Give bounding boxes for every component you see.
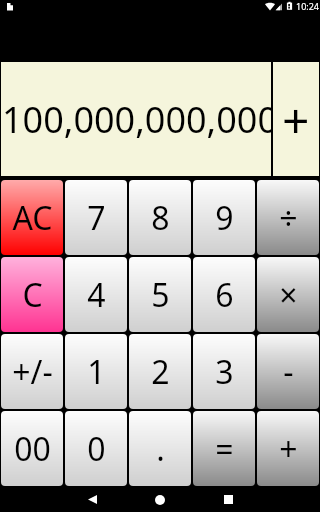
staticText: 10:24	[296, 0, 320, 12]
button[interactable]: 9	[193, 180, 255, 255]
staticText: +/-	[12, 350, 53, 394]
staticText: 2	[151, 350, 170, 394]
button[interactable]: 5	[129, 257, 191, 332]
button[interactable]: 100,000,000,000	[1, 62, 271, 176]
button[interactable]: 00	[1, 411, 63, 486]
staticText: 8	[151, 196, 170, 240]
button[interactable]: 7	[65, 180, 127, 255]
button[interactable]: .	[129, 411, 191, 486]
button[interactable]: 6	[193, 257, 255, 332]
staticText: 0	[87, 427, 106, 471]
button[interactable]: 3	[193, 334, 255, 409]
staticText: ÷	[279, 196, 298, 240]
staticText: 7	[87, 196, 106, 240]
button[interactable]: C	[1, 257, 63, 332]
staticText: .	[156, 427, 165, 471]
staticText: ×	[279, 273, 298, 317]
staticText: 00	[14, 427, 51, 471]
button[interactable]: 0	[65, 411, 127, 486]
button[interactable]: +/-	[1, 334, 63, 409]
staticText: 1	[87, 350, 106, 394]
button[interactable]: 8	[129, 180, 191, 255]
staticText: 9	[215, 196, 234, 240]
staticText: AC	[12, 196, 53, 240]
button[interactable]: ×	[257, 257, 319, 332]
staticText: -	[283, 350, 294, 394]
button[interactable]: Home	[126, 487, 194, 512]
staticText: 5	[151, 273, 170, 317]
button[interactable]: +	[273, 62, 319, 176]
button[interactable]: ÷	[257, 180, 319, 255]
button[interactable]: +	[257, 411, 319, 486]
button[interactable]: Back	[58, 487, 126, 512]
button[interactable]: Recents	[194, 487, 262, 512]
button[interactable]: 2	[129, 334, 191, 409]
staticText: 4	[87, 273, 106, 317]
button[interactable]: =	[193, 411, 255, 486]
button[interactable]: AC	[1, 180, 63, 255]
button[interactable]: 4	[65, 257, 127, 332]
staticText: =	[215, 427, 234, 471]
staticText: 100,000,000,000	[2, 95, 271, 144]
staticText: +	[282, 87, 310, 152]
button[interactable]: 1	[65, 334, 127, 409]
staticText: 6	[215, 273, 234, 317]
staticText: C	[22, 273, 43, 317]
staticText: +	[279, 427, 298, 471]
staticText: 3	[215, 350, 234, 394]
button[interactable]: -	[257, 334, 319, 409]
